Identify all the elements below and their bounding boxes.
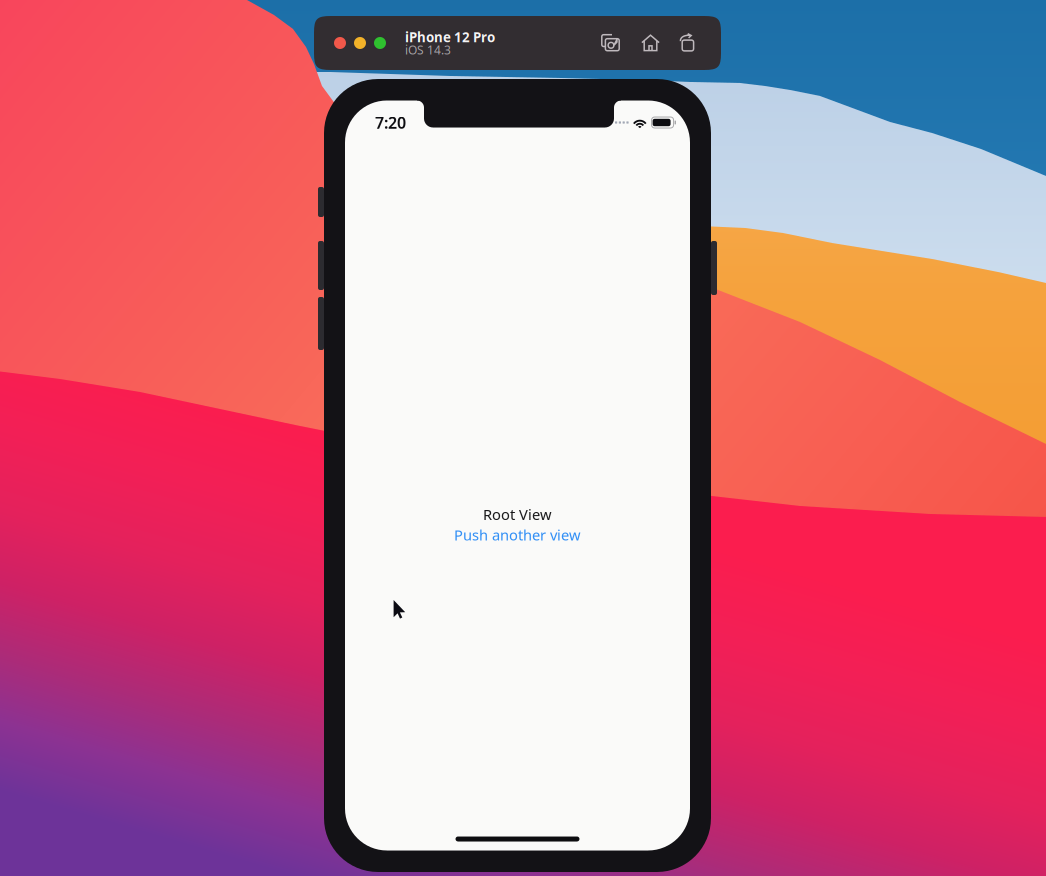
staticText: iPhone 12 Pro — [405, 28, 495, 46]
button[interactable]: Screenshot — [601, 33, 622, 52]
staticText: Root View — [483, 504, 552, 524]
button[interactable]: Rotate — [679, 33, 696, 52]
staticText: Push another view — [454, 525, 581, 544]
button[interactable]: Home — [641, 33, 660, 53]
button[interactable]: Push another view — [454, 525, 581, 544]
staticText: 7:20 — [375, 112, 406, 133]
staticText: iOS 14.3 — [405, 42, 451, 58]
button[interactable]: Minimize window — [354, 37, 366, 49]
button[interactable]: Close window — [334, 37, 346, 49]
button[interactable]: Zoom window — [374, 37, 386, 49]
